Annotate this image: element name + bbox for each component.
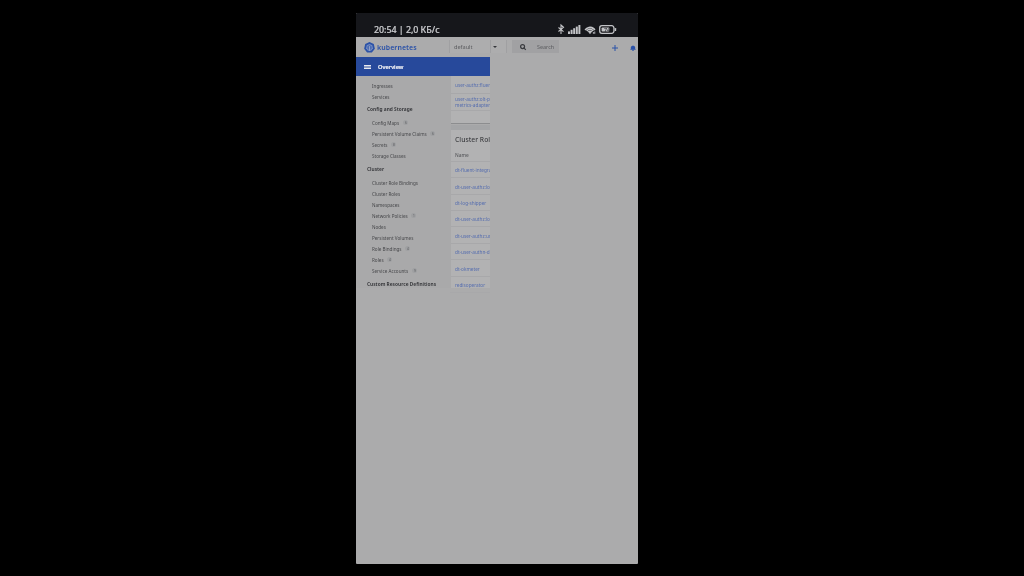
button[interactable]: Secrets (356, 139, 451, 150)
button[interactable]: Nodes (356, 221, 451, 232)
staticText: Nodes (372, 224, 386, 230)
staticText: redisoperator (455, 282, 486, 288)
button[interactable]: Persistent Volume Claims (356, 128, 451, 139)
staticText: Role Bindings (372, 246, 402, 252)
staticText: dt-log-shipper (455, 200, 487, 206)
staticText: Cluster Roles (455, 135, 490, 144)
button[interactable]: Network Policies (356, 210, 451, 221)
staticText: Storage Classes (372, 153, 406, 159)
staticText: 6 (405, 121, 407, 125)
staticText: metrics-adapter:… (455, 102, 490, 108)
button[interactable]: Overview (356, 57, 490, 76)
button[interactable]: Search (512, 40, 559, 53)
staticText: user-authz:fluent-… (455, 82, 490, 88)
staticText: 4 (389, 258, 391, 262)
button[interactable]: Add resource (605, 38, 625, 57)
staticText: Services (372, 94, 390, 100)
button[interactable]: Namespaces (356, 199, 451, 210)
button[interactable]: default (449, 40, 507, 53)
button[interactable]: dt-user-authz:lo… (450, 179, 490, 195)
staticText: Roles (372, 257, 384, 263)
button[interactable]: dt-fluent-integration-… (450, 162, 490, 178)
staticText: Service Accounts (372, 268, 409, 274)
staticText: Namespaces (372, 202, 400, 208)
button[interactable]: Service Accounts (356, 265, 451, 276)
button[interactable]: Storage Classes (356, 150, 451, 161)
button[interactable]: Notifications (623, 38, 638, 57)
staticText: 1 (413, 214, 415, 218)
staticText: 8 (393, 143, 395, 147)
button[interactable]: Custom Resource Definitions (356, 279, 451, 290)
staticText: Secrets (372, 142, 388, 148)
staticText: 9 (414, 269, 416, 273)
staticText: dt-user-authz:us… (455, 233, 490, 239)
staticText: user-authz:olt-pr… (455, 96, 490, 102)
button[interactable]: Cluster Role Bindings (356, 177, 451, 188)
staticText: kubernetes (377, 43, 417, 52)
button[interactable]: Services (356, 91, 451, 102)
button[interactable]: Role Bindings (356, 243, 451, 254)
button[interactable]: Cluster (356, 164, 451, 175)
staticText: 4 (407, 247, 409, 251)
button[interactable]: kubernetes (364, 38, 417, 57)
staticText: Name (455, 152, 469, 159)
staticText: Config and Storage (367, 106, 413, 113)
staticText: Config Maps (372, 120, 400, 126)
button[interactable]: Roles (356, 254, 451, 265)
staticText: Cluster Role Bindings (372, 180, 418, 186)
button[interactable]: redisoperator (450, 277, 490, 293)
button[interactable]: dt-user-authz:us… (450, 228, 490, 244)
staticText: 20:54 | 2,0 КБ/с (374, 23, 440, 35)
button[interactable]: dt-user-authn-de… (450, 244, 490, 260)
button[interactable]: dt-user-authz:lo… (450, 211, 490, 227)
button[interactable]: Persistent Volumes (356, 232, 451, 243)
staticText: Ingresses (372, 83, 393, 89)
staticText: 74 (604, 26, 611, 33)
staticText: Persistent Volume Claims (372, 131, 427, 137)
staticText: Cluster (367, 166, 385, 173)
staticText: dt-okmeter (455, 266, 480, 272)
staticText: dt-user-authn-de… (455, 249, 490, 255)
button[interactable]: Cluster Roles (356, 188, 451, 199)
button[interactable]: dt-okmeter (450, 261, 490, 277)
staticText: dt-user-authz:lo… (455, 216, 490, 222)
staticText: Overview (378, 63, 404, 71)
button[interactable]: Ingresses (356, 80, 451, 91)
button[interactable]: dt-log-shipper (450, 195, 490, 211)
button[interactable]: Config and Storage (356, 104, 451, 115)
staticText: Persistent Volumes (372, 235, 414, 241)
staticText: 6 (432, 132, 434, 136)
staticText: Search (537, 43, 555, 50)
staticText: Cluster Roles (372, 191, 401, 197)
staticText: Custom Resource Definitions (367, 281, 437, 288)
button[interactable]: Config Maps (356, 117, 451, 128)
staticText: dt-user-authz:lo… (455, 184, 490, 190)
staticText: default (454, 43, 473, 51)
staticText: dt-fluent-integration-… (455, 167, 490, 173)
staticText: Network Policies (372, 213, 408, 219)
